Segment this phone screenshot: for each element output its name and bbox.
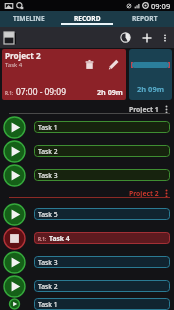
staticText: Task 1: [38, 123, 58, 132]
staticText: 07:00 - 09:09: [16, 86, 66, 97]
button[interactable]: Statistics: [118, 30, 133, 45]
staticText: 2h 09m: [97, 87, 123, 97]
button[interactable]: Start task: [0, 250, 174, 274]
other: Stop task: [3, 227, 26, 250]
button[interactable]: Start task: [0, 139, 174, 163]
button[interactable]: Delete: [82, 57, 96, 71]
button[interactable]: Start task: [0, 163, 174, 187]
staticText: Task 2: [38, 147, 58, 156]
staticText: Task 1: [38, 300, 58, 309]
button[interactable]: Start task: [0, 202, 174, 226]
other: Start task: [3, 275, 26, 298]
staticText: Project 2: [5, 50, 41, 61]
staticText: Project 2: [129, 189, 159, 198]
other: Start task: [3, 203, 26, 226]
other: Start task: [3, 251, 26, 274]
button[interactable]: TIMELINE: [0, 11, 58, 27]
other: Start task: [3, 164, 26, 187]
staticText: Task 4: [5, 61, 23, 69]
staticText: R.1:: [5, 90, 14, 96]
other: Start task: [3, 140, 26, 163]
button[interactable]: Start task: [0, 274, 174, 298]
button[interactable]: RECORD: [58, 11, 116, 27]
staticText: Project 1: [129, 105, 159, 114]
button[interactable]: Start task: [0, 298, 174, 310]
button[interactable]: Project 1: [0, 105, 174, 115]
staticText: RECORD: [74, 14, 101, 23]
button[interactable]: REPORT: [116, 11, 174, 27]
staticText: Task 2: [38, 282, 58, 291]
staticText: TIMELINE: [13, 14, 45, 23]
other: Start task: [3, 116, 26, 139]
button[interactable]: Project 2: [0, 189, 174, 199]
staticText: Task 3: [38, 171, 58, 180]
button[interactable]: Project 2: [2, 49, 126, 100]
other: Project options: [162, 189, 171, 198]
other: Project options: [162, 105, 171, 114]
staticText: REPORT: [132, 14, 158, 23]
button[interactable]: Edit: [106, 57, 120, 71]
button[interactable]: App menu: [3, 31, 16, 44]
staticText: 09:09: [151, 1, 171, 11]
button[interactable]: More options: [158, 31, 171, 44]
button[interactable]: 2h 09m: [129, 49, 172, 100]
button[interactable]: Stop task: [0, 226, 174, 250]
staticText: 2h 09m: [129, 84, 172, 94]
staticText: R.1:: [38, 236, 47, 242]
other: Start task: [3, 298, 26, 310]
staticText: Task 3: [38, 258, 58, 267]
button[interactable]: Add: [139, 30, 154, 45]
staticText: Task 4: [49, 234, 70, 243]
staticText: Task 5: [38, 210, 58, 219]
button[interactable]: Start task: [0, 115, 174, 139]
